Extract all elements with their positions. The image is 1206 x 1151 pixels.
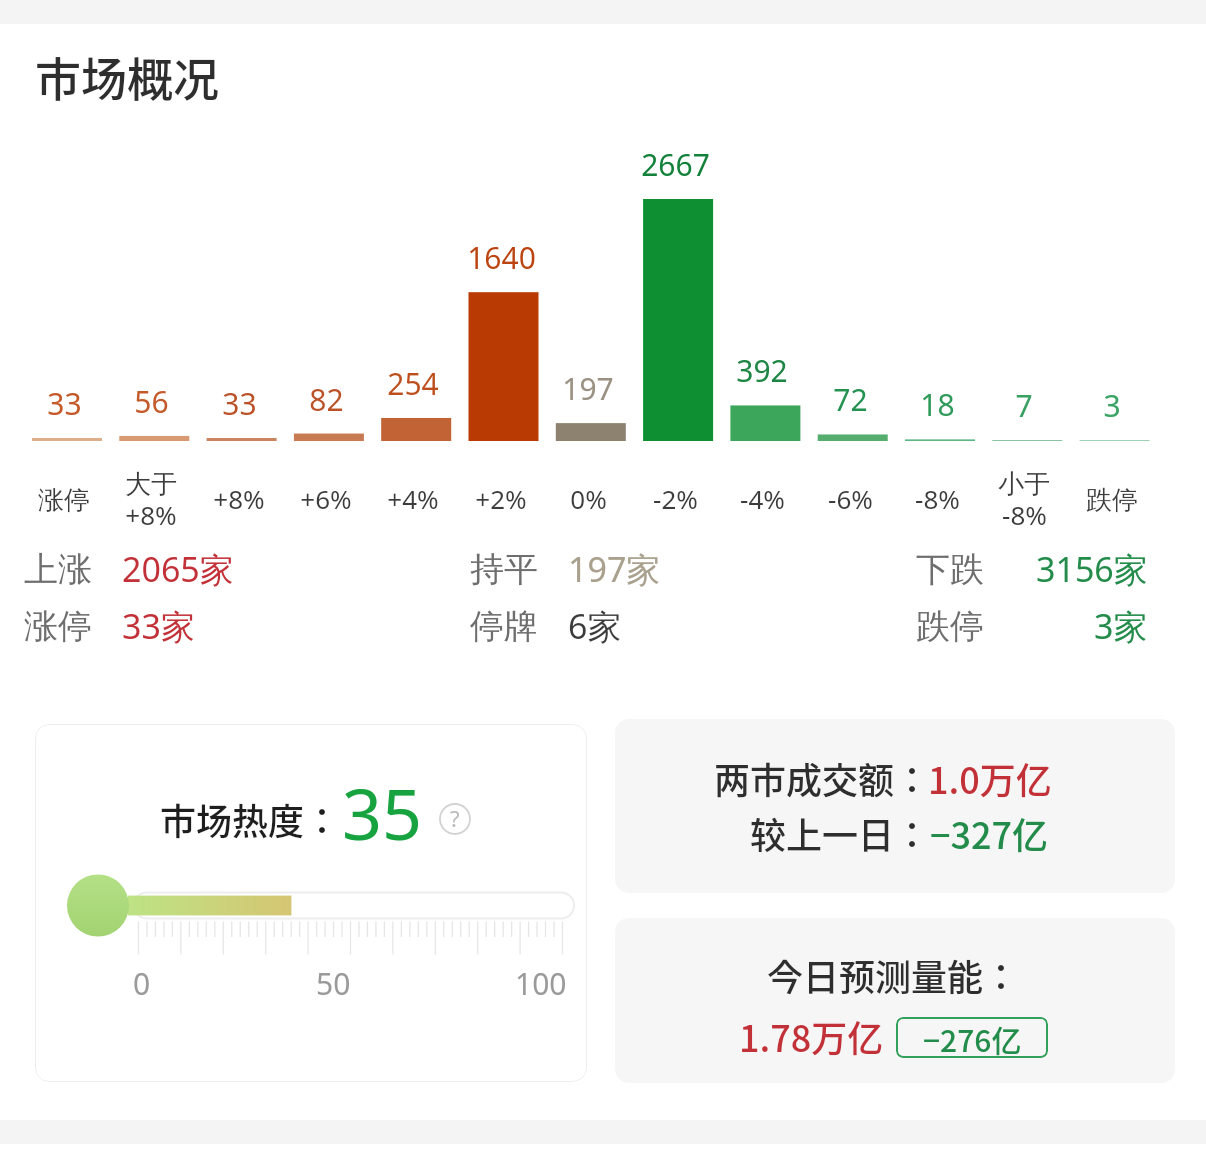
staticText: +2% (475, 481, 527, 516)
staticText: 35 (342, 765, 423, 860)
staticText: 3156家 (1036, 546, 1148, 592)
staticText: −327亿 (930, 807, 1049, 859)
staticText: 1.78万亿 (739, 1010, 884, 1062)
button[interactable]: 两市成交额： (615, 719, 1175, 893)
staticText: 33 (47, 383, 82, 424)
staticText: +8% (213, 481, 265, 516)
staticText: 2667 (641, 144, 710, 185)
staticText: 1.0万亿 (928, 752, 1052, 804)
staticText: 跌停 (1086, 484, 1138, 517)
staticText: 56 (134, 381, 169, 422)
staticText: 2065家 (122, 546, 234, 592)
staticText: 7 (1015, 385, 1033, 426)
staticText: 今日预测量能： (767, 949, 1020, 1001)
button[interactable]: 市场热度： (35, 724, 587, 1082)
staticText: -6% (828, 481, 873, 516)
staticText: 50 (316, 963, 351, 1004)
staticText: ? (450, 803, 460, 833)
staticText: -8% (1002, 497, 1047, 532)
staticText: 3 (1103, 385, 1121, 426)
staticText: 1640 (467, 237, 536, 278)
staticText: -4% (740, 481, 785, 516)
staticText: 33家 (122, 603, 195, 649)
staticText: +6% (300, 481, 352, 516)
staticText: 涨停 (24, 605, 92, 648)
staticText: 两市成交额： (714, 752, 931, 804)
staticText: -2% (653, 481, 698, 516)
staticText: -8% (915, 481, 960, 516)
staticText: 下跌 (916, 548, 984, 591)
staticText: 3家 (1094, 603, 1148, 649)
staticText: 涨停 (38, 484, 90, 517)
staticText: 254 (387, 363, 439, 404)
staticText: 上涨 (24, 548, 92, 591)
staticText: +4% (387, 481, 439, 516)
staticText: 72 (833, 379, 868, 420)
staticText: 较上一日： (750, 807, 931, 859)
staticText: 0 (133, 963, 151, 1004)
staticText: 33 (222, 383, 257, 424)
staticText: 小于 (998, 468, 1050, 501)
staticText: 18 (920, 384, 955, 425)
staticText: −276亿 (923, 1017, 1022, 1058)
staticText: 跌停 (916, 605, 984, 648)
staticText: 市场热度： (160, 793, 341, 845)
staticText: 100 (515, 963, 567, 1004)
staticText: 197 (562, 368, 614, 409)
staticText: 392 (736, 350, 788, 391)
staticText: 82 (309, 379, 344, 420)
staticText: 大于 (125, 468, 177, 501)
staticText: +8% (125, 497, 177, 532)
button[interactable]: 今日预测量能： (615, 918, 1175, 1083)
staticText: 停牌 (470, 605, 538, 648)
staticText: 6家 (568, 603, 622, 649)
staticText: 持平 (470, 548, 538, 591)
staticText: 0% (570, 481, 607, 516)
staticText: 197家 (568, 546, 661, 592)
button[interactable]: 市场热度说明 (439, 803, 471, 835)
staticText: 市场概况 (35, 43, 219, 110)
